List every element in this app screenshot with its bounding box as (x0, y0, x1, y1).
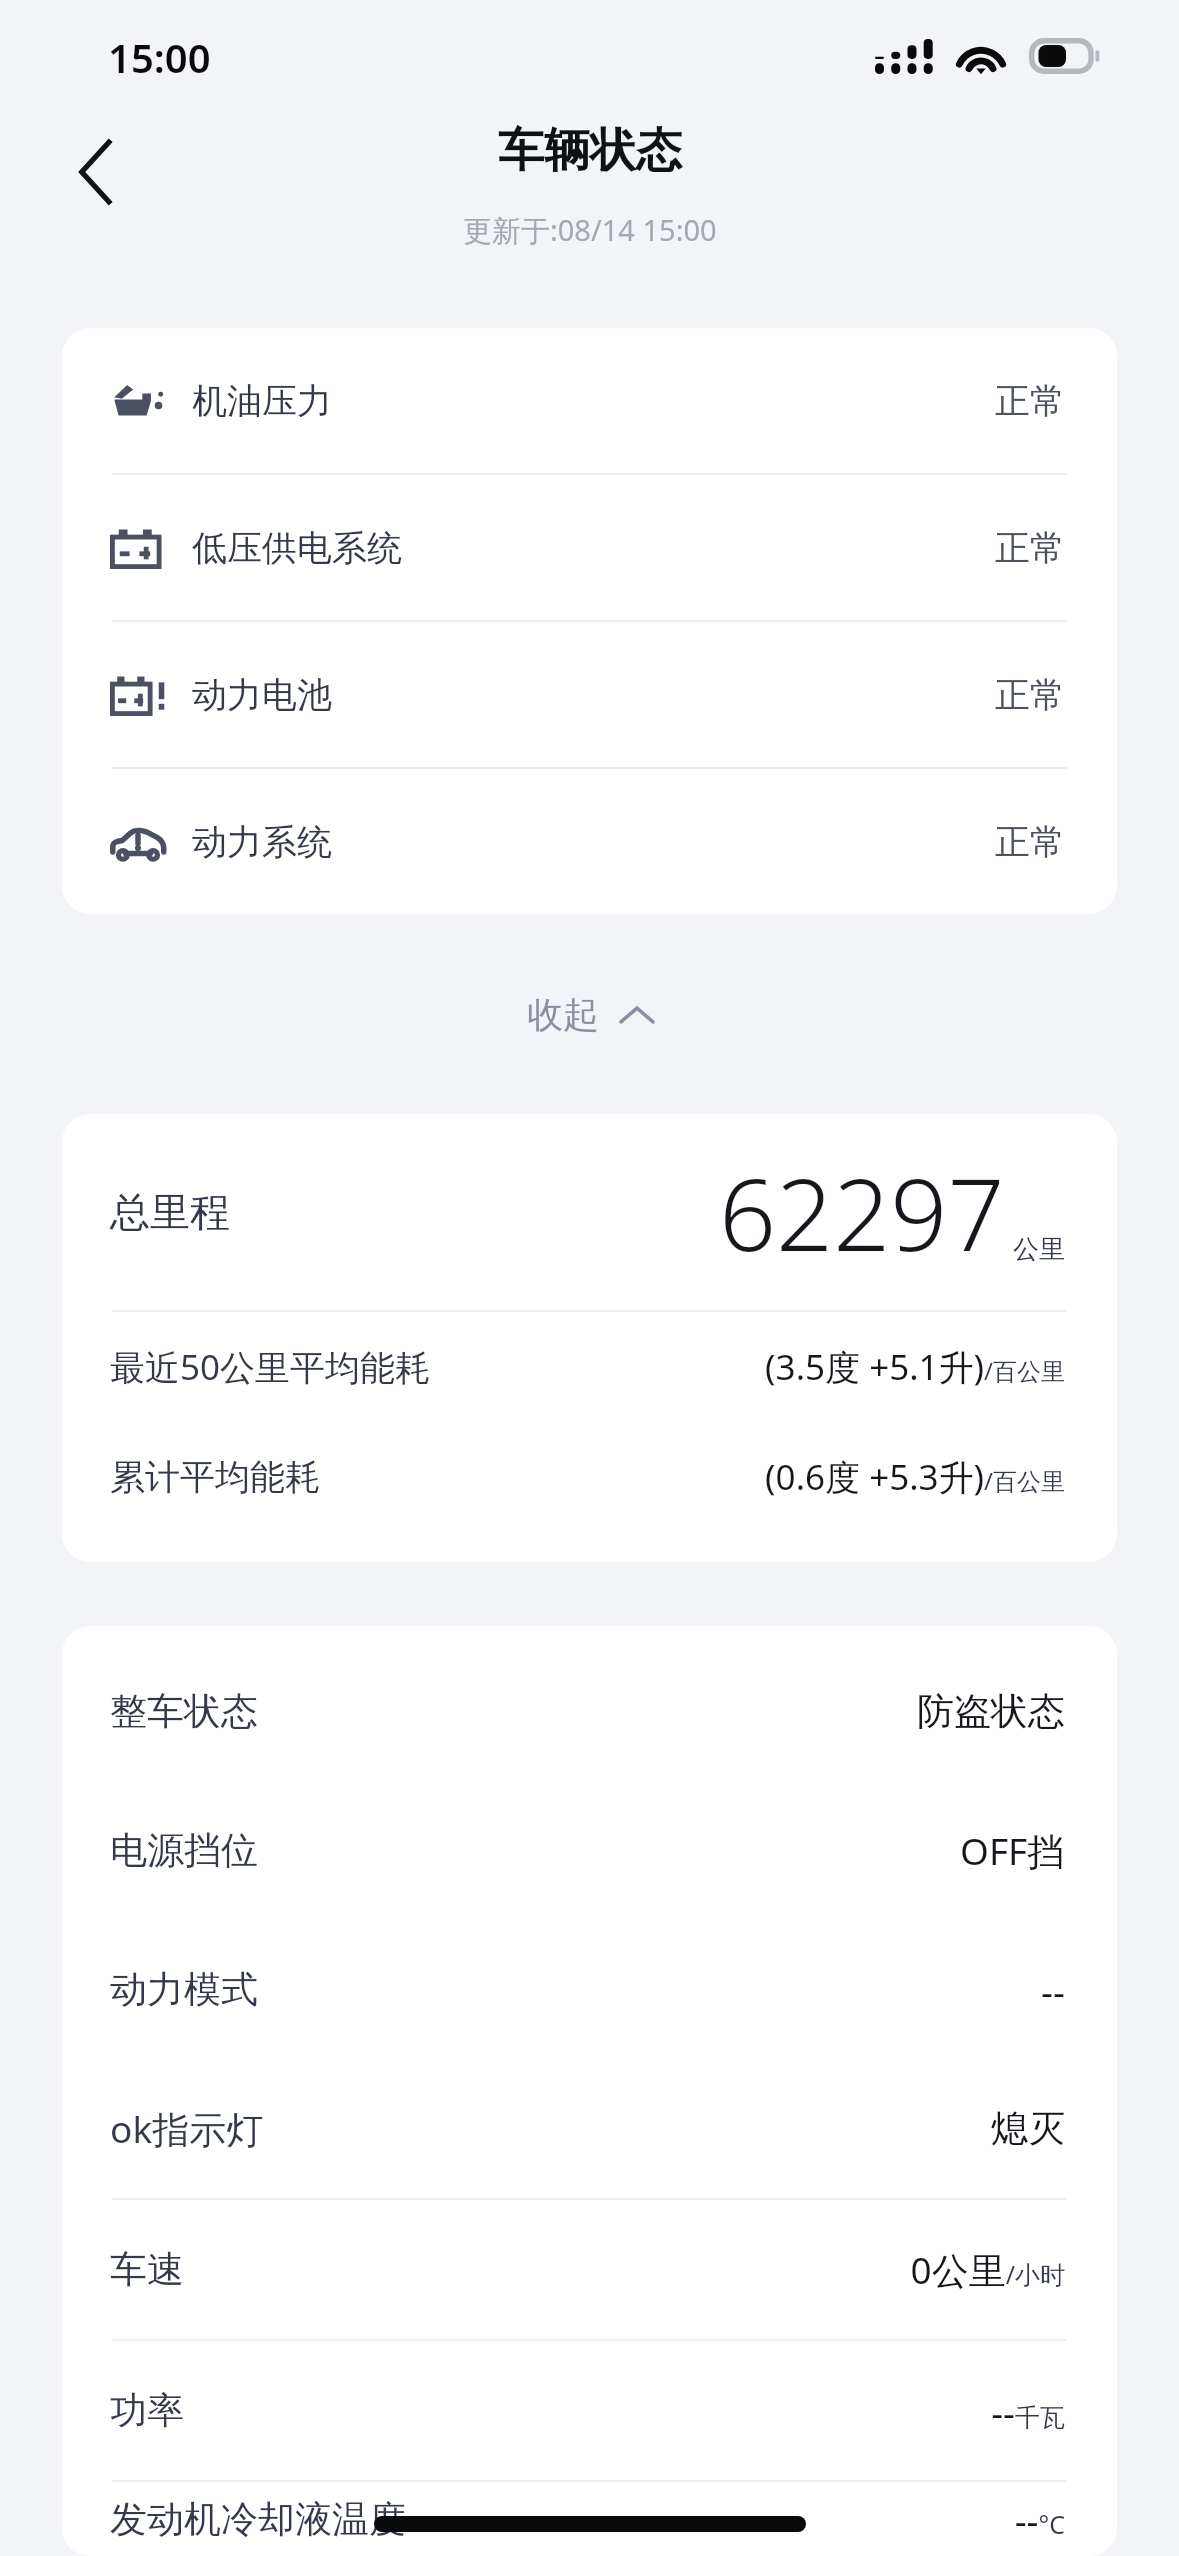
button[interactable]: 返回 (36, 112, 156, 232)
staticText: --°C (1014, 2494, 1065, 2544)
staticText: 正常 (995, 673, 1065, 717)
staticText: 公里 (1013, 1233, 1065, 1266)
button[interactable]: 动力电池 (62, 622, 1117, 767)
staticText: 动力系统 (192, 820, 332, 864)
staticText: 15:00 (108, 30, 211, 84)
button[interactable]: 动力系统 (62, 769, 1117, 914)
button[interactable]: ok指示灯 (62, 2059, 1117, 2198)
button[interactable]: 低压供电系统 (62, 475, 1117, 620)
staticText: 最近50公里平均能耗 (110, 1343, 431, 1391)
button[interactable]: 累计平均能耗 (62, 1422, 1117, 1532)
button[interactable]: 机油压力 (62, 328, 1117, 473)
staticText: 防盗状态 (917, 1688, 1065, 1735)
staticText: 动力电池 (192, 673, 332, 717)
staticText: 熄灭 (991, 2105, 1065, 2152)
button[interactable]: 电源挡位 (62, 1781, 1117, 1920)
button[interactable]: 发动机冷却液温度 (62, 2482, 1117, 2556)
staticText: 机油压力 (192, 379, 332, 423)
staticText: 累计平均能耗 (110, 1455, 320, 1499)
staticText: 更新于:08/14 15:00 (463, 210, 717, 250)
staticText: --千瓦 (991, 2386, 1065, 2436)
staticText: 62297 (719, 1144, 1005, 1280)
staticText: 0公里/小时 (910, 2244, 1065, 2295)
staticText: 功率 (110, 2387, 184, 2434)
staticText: 收起 (527, 992, 599, 1037)
staticText: 正常 (995, 820, 1065, 864)
staticText: OFF挡 (960, 1825, 1065, 1876)
staticText: 正常 (995, 526, 1065, 570)
button[interactable]: 功率 (62, 2341, 1117, 2480)
staticText: (3.5度 +5.1升)/百公里 (765, 1343, 1065, 1391)
staticText: 电源挡位 (110, 1827, 258, 1874)
button[interactable]: 整车状态 (62, 1642, 1117, 1781)
button[interactable]: 动力模式 (62, 1920, 1117, 2059)
staticText: 正常 (995, 379, 1065, 423)
button[interactable]: 收起 (483, 970, 697, 1059)
staticText: ok指示灯 (110, 2103, 264, 2154)
staticText: 总里程 (110, 1187, 230, 1237)
staticText: 低压供电系统 (192, 526, 402, 570)
staticText: 整车状态 (110, 1688, 258, 1735)
staticText: 动力模式 (110, 1966, 258, 2013)
staticText: 发动机冷却液温度 (110, 2496, 406, 2543)
staticText: 车辆状态 (498, 122, 682, 180)
staticText: -- (1041, 1965, 1065, 2015)
staticText: (0.6度 +5.3升)/百公里 (765, 1453, 1065, 1501)
button[interactable]: 最近50公里平均能耗 (62, 1312, 1117, 1422)
button[interactable]: 车速 (62, 2200, 1117, 2339)
staticText: 车速 (110, 2246, 184, 2293)
